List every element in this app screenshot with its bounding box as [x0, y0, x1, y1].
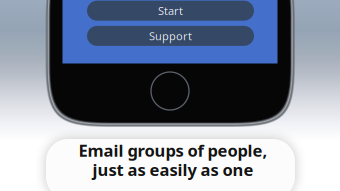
staticText: just as easily as one — [92, 158, 253, 181]
staticText: Start — [158, 3, 183, 18]
staticText: Support — [149, 28, 192, 43]
button[interactable]: Start — [87, 1, 254, 21]
staticText: Email groups of people, — [78, 139, 267, 161]
button[interactable]: Support — [87, 26, 254, 46]
